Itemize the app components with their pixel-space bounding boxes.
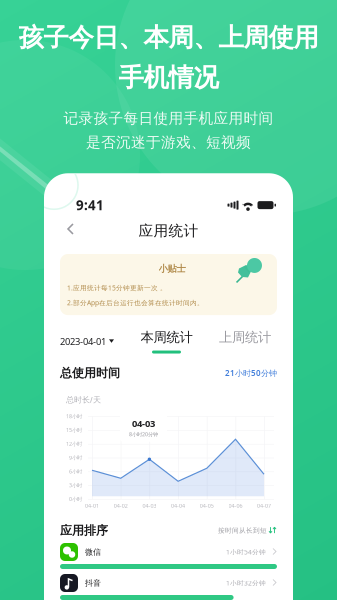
staticText: 1.应用统计每15分钟更新一次 。 <box>67 283 167 292</box>
staticText: 本周统计 <box>140 329 192 345</box>
staticText: 04-02 <box>114 502 128 509</box>
button[interactable]: 2023-04-01 <box>60 335 114 347</box>
button[interactable]: 抖音 <box>44 569 293 600</box>
staticText: 21小时50分钟 <box>225 368 277 378</box>
button[interactable]: 按时间从长到短 <box>218 526 277 535</box>
staticText: 3小时 <box>69 482 82 489</box>
staticText: 04-03 <box>132 417 155 430</box>
staticText: 按时间从长到短 <box>218 526 267 535</box>
staticText: 上周统计 <box>219 329 271 345</box>
staticText: 应用统计 <box>138 222 198 240</box>
staticText: 9:41 <box>76 196 104 214</box>
staticText: 04-04 <box>171 502 185 509</box>
staticText: 2.部分App在后台运行也会算在统计时间内。 <box>67 298 204 307</box>
staticText: 9小时 <box>69 454 82 461</box>
staticText: 微信 <box>85 547 101 557</box>
staticText: 孩子今日、本周、上周使用 <box>18 22 318 53</box>
staticText: 04-01 <box>85 502 99 509</box>
staticText: 总时长/天 <box>66 394 101 405</box>
staticText: 应用排序 <box>60 523 108 538</box>
staticText: 抖音 <box>85 578 101 588</box>
staticText: 2023-04-01 <box>60 335 106 347</box>
staticText: 手机情况 <box>118 62 218 93</box>
staticText: 记录孩子每日使用手机应用时间 <box>63 109 273 127</box>
button[interactable]: 本周统计 <box>140 329 192 353</box>
staticText: 15小时 <box>66 426 82 434</box>
button[interactable]: 微信 <box>44 538 293 569</box>
staticText: 总使用时间 <box>60 365 120 380</box>
staticText: 0小时 <box>69 495 82 503</box>
staticText: 04-05 <box>200 502 214 509</box>
staticText: 12小时 <box>66 440 82 447</box>
staticText: 04-03 <box>142 502 156 509</box>
staticText: 8小时20分钟 <box>129 431 158 438</box>
staticText: 1小时54分钟 <box>226 548 266 556</box>
staticText: 18小时 <box>66 413 82 420</box>
button[interactable]: 上周统计 <box>219 329 271 353</box>
staticText: 6小时 <box>69 468 82 475</box>
staticText: 是否沉迷于游戏、短视频 <box>86 133 251 151</box>
staticText: 04-06 <box>228 502 242 509</box>
button[interactable]: Back <box>62 218 88 244</box>
staticText: 1小时32分钟 <box>226 579 266 587</box>
staticText: 小贴士 <box>158 263 185 274</box>
staticText: 04-07 <box>257 502 271 509</box>
